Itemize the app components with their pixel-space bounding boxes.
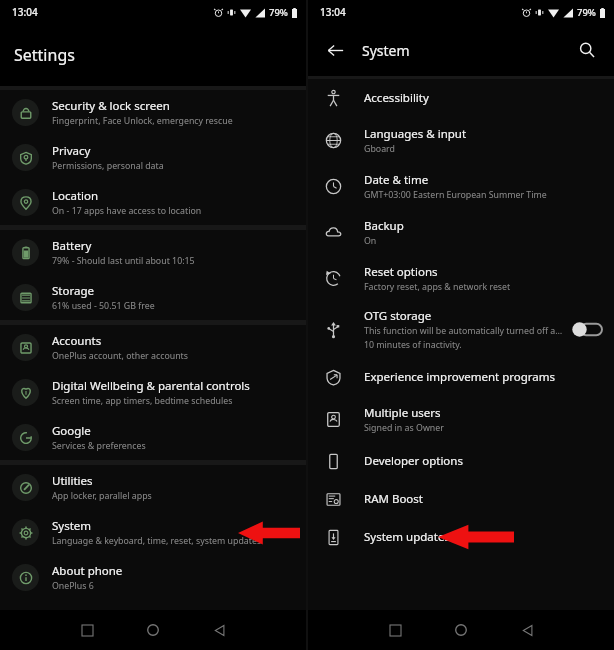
staticText: Google [52, 423, 91, 439]
staticText: GMT+03:00 Eastern European Summer Time [364, 189, 547, 201]
staticText: Gboard [364, 143, 395, 155]
button[interactable]: Utilities [0, 465, 306, 510]
button[interactable]: Accessibility [308, 79, 614, 117]
staticText: Services & preferences [52, 440, 146, 452]
staticText: This function will be automatically turn… [364, 325, 564, 337]
staticText: Storage [52, 283, 94, 299]
staticText: Accounts [52, 333, 102, 349]
button[interactable]: Privacy [0, 135, 306, 180]
button[interactable]: Digital Wellbeing & parental controls [0, 370, 306, 415]
button[interactable]: Multiple users [308, 396, 614, 442]
staticText: Multiple users [364, 405, 441, 421]
staticText: RAM Boost [364, 491, 423, 507]
button[interactable]: Experience improvement programs [308, 358, 614, 396]
staticText: Date & time [364, 172, 429, 188]
staticText: Screen time, app timers, bedtime schedul… [52, 395, 233, 407]
staticText: 10 minutes of inactivity. [364, 339, 462, 351]
button[interactable]: Search [570, 33, 604, 67]
button[interactable]: Google [0, 415, 306, 460]
button[interactable]: OTG storage toggle [572, 322, 602, 337]
button[interactable]: Recents [63, 610, 111, 650]
button[interactable]: Developer options [308, 442, 614, 480]
staticText: 13:04 [320, 5, 346, 19]
button[interactable]: Back [195, 610, 243, 650]
staticText: 79% - Should last until about 10:15 [52, 255, 195, 267]
staticText: On [364, 235, 377, 247]
staticText: About phone [52, 563, 123, 579]
staticText: Battery [52, 238, 92, 254]
button[interactable]: Accounts [0, 325, 306, 370]
button[interactable]: System [0, 510, 306, 555]
staticText: Reset options [364, 264, 438, 280]
button[interactable]: Battery [0, 230, 306, 275]
button[interactable]: Location [0, 180, 306, 225]
staticText: Factory reset, apps & network reset [364, 281, 511, 293]
button[interactable]: Languages & input [308, 117, 614, 163]
staticText: Utilities [52, 473, 93, 489]
staticText: Permissions, personal data [52, 160, 164, 172]
staticText: Accessibility [364, 90, 429, 106]
button[interactable]: OTG storage [308, 301, 614, 358]
staticText: 79% [269, 6, 288, 19]
button[interactable]: Recents [371, 610, 419, 650]
button[interactable]: Storage [0, 275, 306, 320]
button[interactable]: RAM Boost [308, 480, 614, 518]
staticText: App locker, parallel apps [52, 490, 152, 502]
button[interactable]: Back [503, 610, 551, 650]
staticText: Privacy [52, 143, 91, 159]
staticText: OTG storage [364, 308, 432, 324]
staticText: 61% used - 50.51 GB free [52, 300, 155, 312]
staticText: System [52, 518, 92, 534]
button[interactable]: Home [437, 610, 485, 650]
staticText: Digital Wellbeing & parental controls [52, 378, 250, 394]
button[interactable]: System updates [308, 518, 614, 556]
staticText: On - 17 apps have access to location [52, 205, 202, 217]
staticText: 79% [577, 6, 596, 19]
staticText: System updates [364, 529, 450, 545]
staticText: System [362, 41, 410, 60]
staticText: Settings [14, 44, 75, 66]
button[interactable]: Back [318, 33, 352, 67]
staticText: 13:04 [12, 5, 38, 19]
button[interactable]: Home [129, 610, 177, 650]
button[interactable]: Backup [308, 209, 614, 255]
staticText: Languages & input [364, 126, 467, 142]
staticText: Location [52, 188, 99, 204]
staticText: OnePlus account, other accounts [52, 350, 188, 362]
staticText: Fingerprint, Face Unlock, emergency resc… [52, 115, 233, 127]
staticText: Backup [364, 218, 404, 234]
staticText: OnePlus 6 [52, 580, 94, 592]
staticText: Signed in as Owner [364, 422, 444, 434]
staticText: Security & lock screen [52, 98, 170, 114]
button[interactable]: About phone [0, 555, 306, 600]
staticText: Developer options [364, 453, 463, 469]
button[interactable]: Security & lock screen [0, 90, 306, 135]
button[interactable]: Date & time [308, 163, 614, 209]
staticText: Experience improvement programs [364, 369, 556, 385]
staticText: Language & keyboard, time, reset, system… [52, 535, 262, 547]
button[interactable]: Reset options [308, 255, 614, 301]
